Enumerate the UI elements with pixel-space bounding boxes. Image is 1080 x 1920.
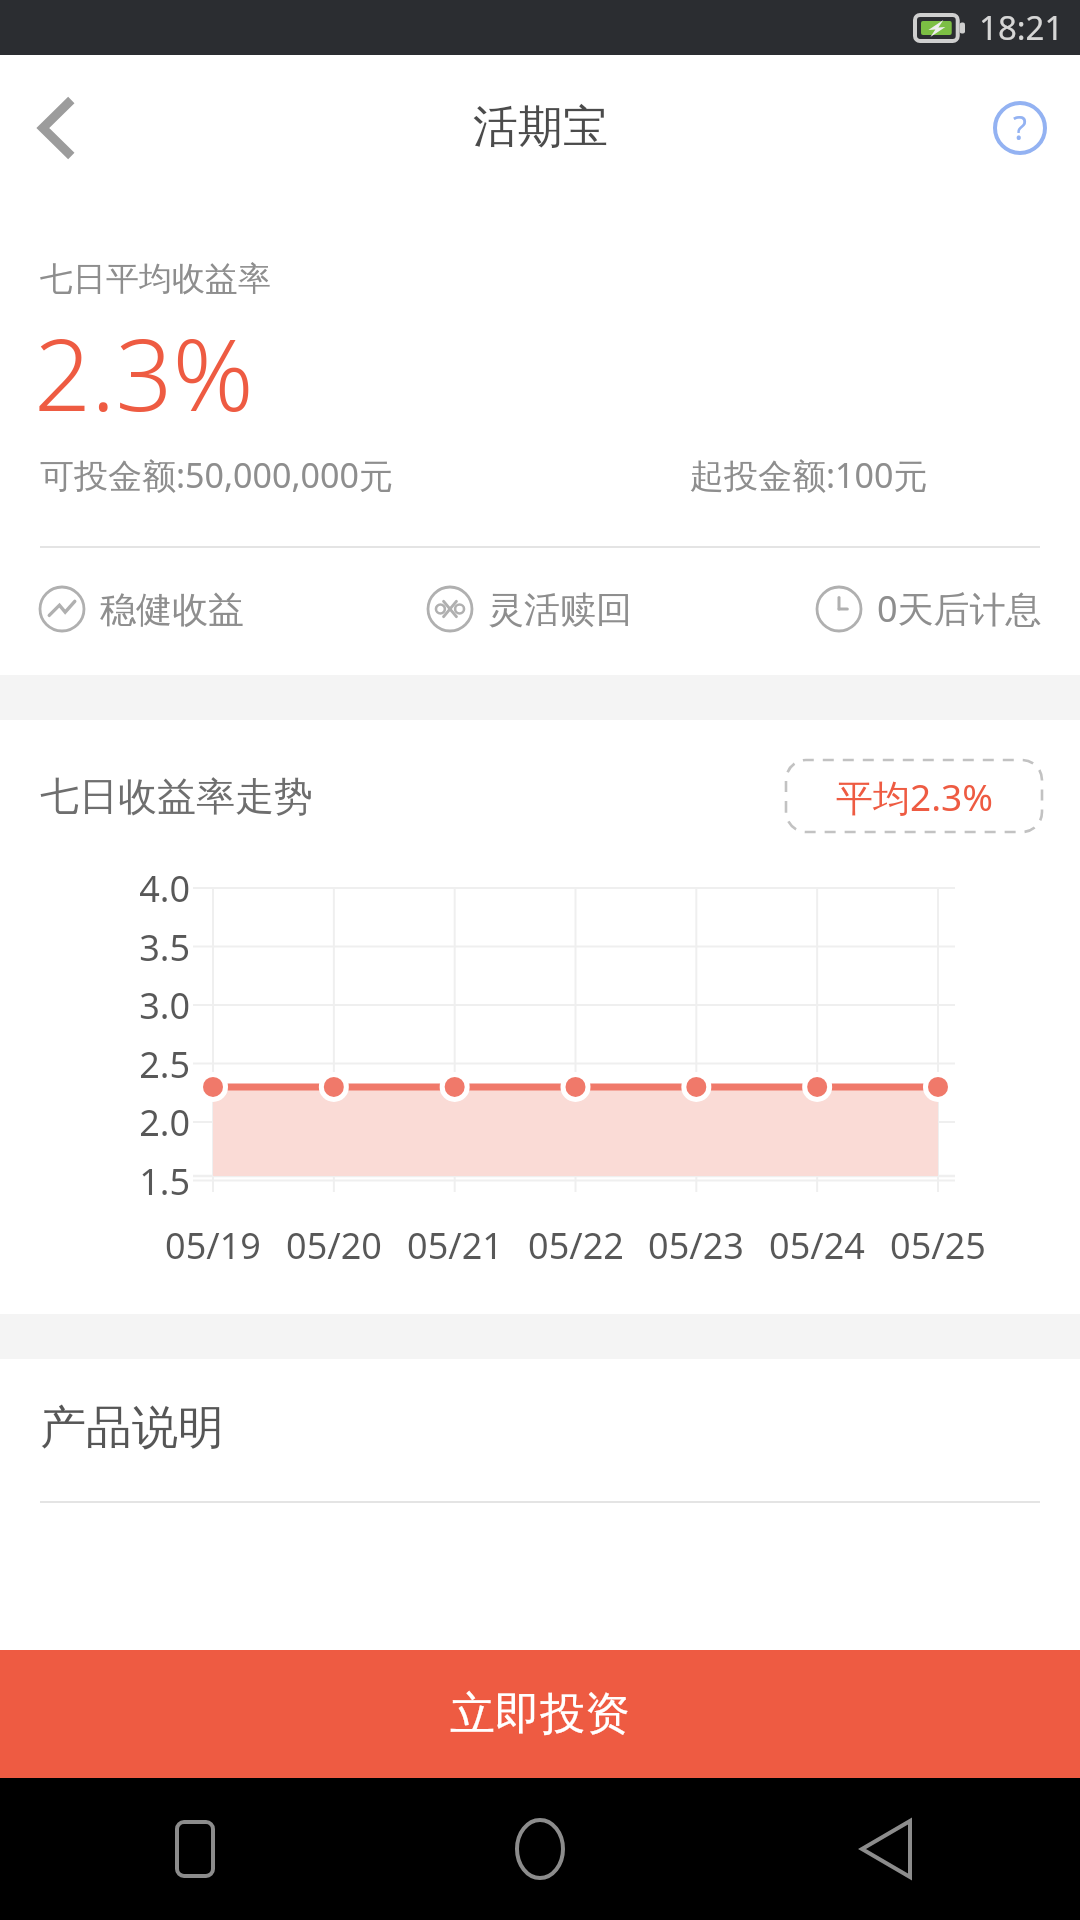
button[interactable]: Back — [0, 55, 115, 200]
staticText: 05/20 — [276, 1221, 392, 1270]
button[interactable]: 灵活赎回 — [426, 585, 632, 633]
staticText: 立即投资 — [450, 1686, 630, 1743]
staticText: 3.0 — [128, 981, 190, 1030]
button[interactable]: Back — [830, 1794, 940, 1904]
button[interactable]: 稳健收益 — [38, 585, 244, 633]
button[interactable]: 立即投资 — [0, 1650, 1080, 1778]
staticText: 2.3% — [34, 304, 254, 440]
staticText: 05/21 — [397, 1221, 513, 1270]
staticText: 活期宝 — [473, 99, 608, 156]
staticText: 平均2.3% — [836, 771, 993, 822]
staticText: 2.0 — [128, 1098, 190, 1147]
staticText: ? — [1013, 106, 1027, 150]
button[interactable]: Recent apps — [140, 1794, 250, 1904]
staticText: 稳健收益 — [100, 587, 244, 632]
staticText: 18:21 — [979, 5, 1064, 50]
staticText: 七日平均收益率 — [40, 258, 271, 300]
staticText: 05/24 — [759, 1221, 875, 1270]
staticText: 4.0 — [128, 864, 190, 913]
button[interactable]: 平均2.3% — [786, 760, 1042, 832]
staticText: 05/23 — [638, 1221, 754, 1270]
staticText: 3.5 — [128, 923, 190, 972]
button[interactable]: Home — [485, 1794, 595, 1904]
staticText: 05/22 — [518, 1221, 634, 1270]
button[interactable]: 0天后计息 — [815, 584, 1042, 633]
staticText: 产品说明 — [40, 1399, 224, 1457]
staticText: 起投金额:100元 — [690, 452, 928, 498]
button[interactable]: Help — [960, 55, 1080, 200]
staticText: 05/25 — [880, 1221, 996, 1270]
staticText: 七日收益率走势 — [40, 772, 313, 821]
staticText: 0天后计息 — [877, 584, 1042, 633]
staticText: 05/19 — [155, 1221, 271, 1270]
staticText: 1.5 — [128, 1157, 190, 1206]
staticText: 可投金额:50,000,000元 — [40, 452, 393, 498]
staticText: 2.5 — [128, 1040, 190, 1089]
staticText: 灵活赎回 — [488, 587, 632, 632]
